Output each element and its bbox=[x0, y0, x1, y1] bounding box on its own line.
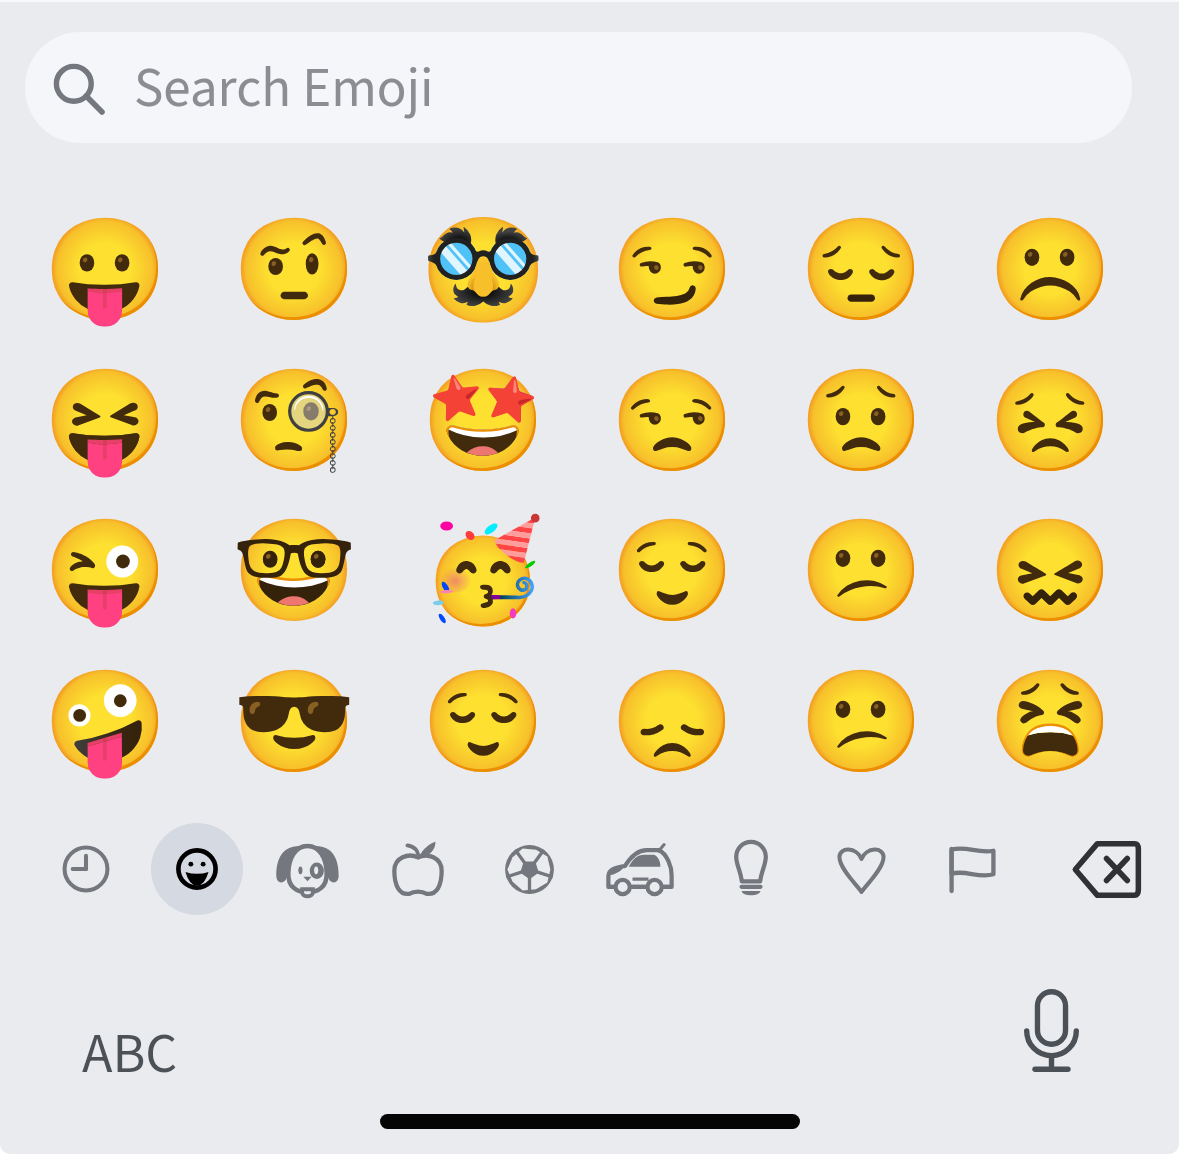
button[interactable]: Animals bbox=[261, 823, 353, 915]
button[interactable]: 😖 bbox=[956, 495, 1144, 645]
staticText: 🥳 bbox=[421, 512, 546, 629]
staticText: 🤨 bbox=[232, 211, 357, 328]
button[interactable]: 😣 bbox=[956, 345, 1144, 495]
staticText: 🥸 bbox=[421, 211, 546, 328]
staticText: 😣 bbox=[988, 362, 1113, 479]
button[interactable]: Flags bbox=[926, 823, 1018, 915]
staticText: 😔 bbox=[799, 211, 924, 328]
button[interactable]: Travel bbox=[594, 823, 686, 915]
staticText: 😖 bbox=[988, 512, 1113, 629]
button[interactable]: ☹️ bbox=[956, 194, 1144, 344]
button[interactable]: 😔 bbox=[767, 194, 955, 344]
staticText: 😕 bbox=[799, 512, 924, 629]
button[interactable]: Voice input bbox=[991, 970, 1111, 1090]
staticText: ABC bbox=[82, 1015, 178, 1095]
staticText: 😞 bbox=[610, 663, 735, 780]
button[interactable]: Symbols bbox=[815, 823, 907, 915]
button[interactable]: 😒 bbox=[578, 345, 766, 495]
button[interactable]: 😌 bbox=[389, 646, 577, 796]
button[interactable]: 🤪 bbox=[11, 646, 199, 796]
button[interactable]: 😞 bbox=[578, 646, 766, 796]
staticText: 😕 bbox=[799, 663, 924, 780]
button[interactable]: 🤓 bbox=[200, 495, 388, 645]
button[interactable]: 🧐 bbox=[200, 345, 388, 495]
button[interactable]: ABC bbox=[30, 995, 230, 1110]
staticText: 😒 bbox=[610, 362, 735, 479]
button[interactable]: 😝 bbox=[11, 345, 199, 495]
staticText: 😏 bbox=[610, 211, 735, 328]
staticText: Search Emoji bbox=[134, 50, 434, 128]
button[interactable]: 😌 bbox=[578, 495, 766, 645]
button[interactable]: Activities bbox=[483, 823, 575, 915]
staticText: 😎 bbox=[232, 663, 357, 780]
button[interactable]: 🥸 bbox=[389, 194, 577, 344]
button[interactable]: Food bbox=[372, 823, 464, 915]
staticText: 😝 bbox=[43, 362, 168, 479]
staticText: 😌 bbox=[421, 663, 546, 780]
button[interactable]: 😎 bbox=[200, 646, 388, 796]
button[interactable]: Search Emoji bbox=[25, 32, 1132, 143]
button[interactable]: Smileys bbox=[151, 823, 243, 915]
button[interactable]: Objects bbox=[705, 823, 797, 915]
button[interactable]: 😕 bbox=[767, 646, 955, 796]
button[interactable]: 😏 bbox=[578, 194, 766, 344]
button[interactable]: 🤨 bbox=[200, 194, 388, 344]
staticText: 🤪 bbox=[43, 663, 168, 780]
button[interactable]: 😜 bbox=[11, 495, 199, 645]
staticText: 🧐 bbox=[232, 362, 357, 479]
staticText: 😫 bbox=[988, 663, 1113, 780]
button[interactable]: 🤩 bbox=[389, 345, 577, 495]
staticText: 🤓 bbox=[232, 512, 357, 629]
staticText: ☹️ bbox=[988, 211, 1113, 328]
button[interactable]: 😛 bbox=[11, 194, 199, 344]
staticText: 😌 bbox=[610, 512, 735, 629]
staticText: 🤩 bbox=[421, 362, 546, 479]
button[interactable]: 🥳 bbox=[389, 495, 577, 645]
staticText: 😜 bbox=[43, 512, 168, 629]
button[interactable]: 😫 bbox=[956, 646, 1144, 796]
button[interactable]: 😟 bbox=[767, 345, 955, 495]
staticText: 😟 bbox=[799, 362, 924, 479]
staticText: 😛 bbox=[43, 211, 168, 328]
button[interactable]: 😕 bbox=[767, 495, 955, 645]
button[interactable]: Backspace bbox=[1051, 823, 1161, 915]
button[interactable]: Recent bbox=[40, 823, 132, 915]
